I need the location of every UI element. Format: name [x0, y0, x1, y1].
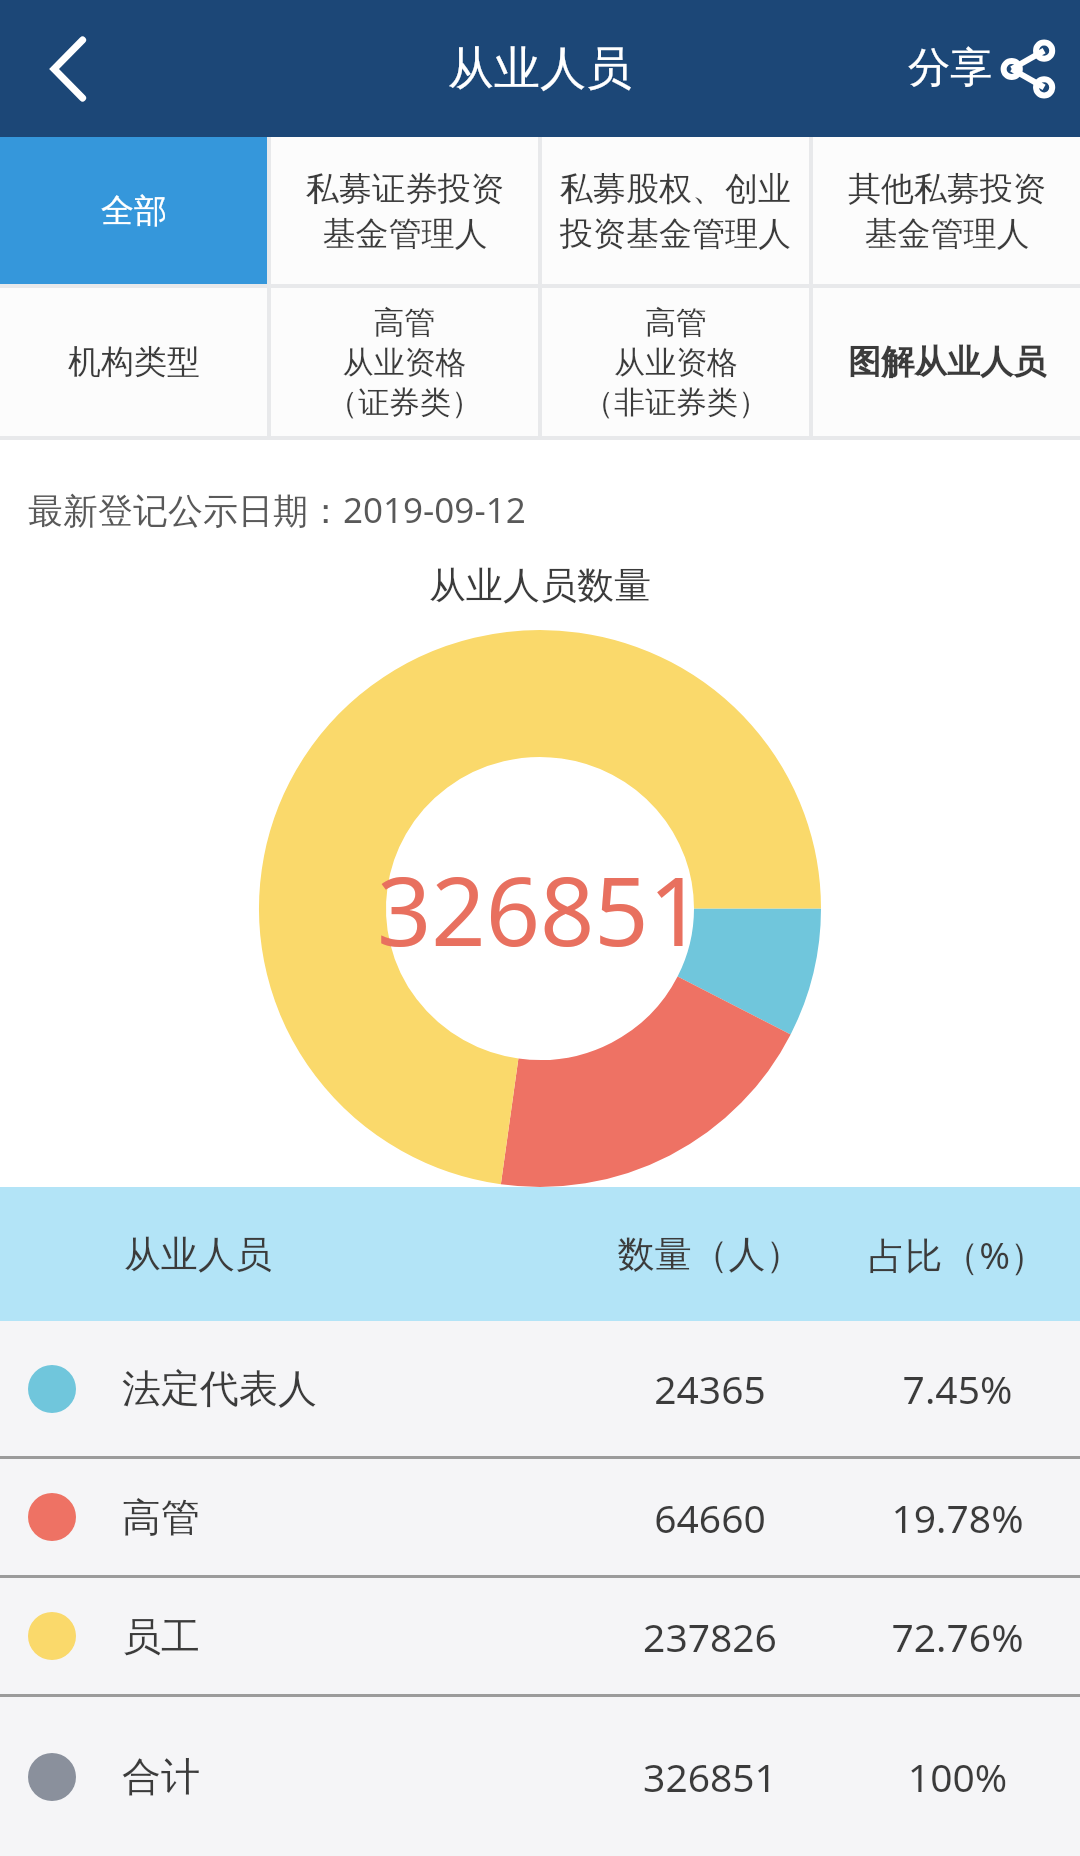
staticText: 私募证券投资 基金管理人 — [306, 168, 504, 254]
button[interactable]: 全部 — [0, 137, 267, 284]
button[interactable]: 员工 — [0, 1578, 1080, 1694]
staticText: 高管 从业资格 （证券类） — [327, 303, 482, 422]
button[interactable]: 合计 — [0, 1697, 1080, 1856]
staticText: 高管 — [122, 1493, 585, 1542]
staticText: 图解从业人员 — [848, 341, 1046, 383]
staticText: 从业人员数量 — [429, 562, 651, 609]
button[interactable]: 私募股权、创业 投资基金管理人 — [542, 137, 809, 284]
button[interactable]: 法定代表人 — [0, 1321, 1080, 1456]
staticText: 员工 — [122, 1612, 585, 1661]
staticText: 私募股权、创业 投资基金管理人 — [560, 168, 791, 254]
staticText: 分享 — [908, 42, 992, 95]
button[interactable]: 高管 — [0, 1459, 1080, 1575]
staticText: 326851 — [585, 1750, 835, 1803]
staticText: 237826 — [585, 1610, 835, 1663]
staticText: 法定代表人 — [122, 1364, 585, 1413]
staticText: 19.78% — [835, 1491, 1080, 1544]
staticText: 机构类型 — [68, 341, 200, 383]
button[interactable]: 高管 从业资格 （非证券类） — [542, 288, 809, 436]
staticText: 7.45% — [835, 1362, 1080, 1415]
button[interactable]: 私募证券投资 基金管理人 — [271, 137, 538, 284]
staticText: 从业人员 — [448, 40, 632, 98]
staticText: 最新登记公示日期：2019-09-12 — [28, 486, 526, 534]
staticText: 合计 — [122, 1752, 585, 1801]
other: Share — [1002, 42, 1056, 96]
staticText: 326851 — [377, 844, 704, 973]
staticText: 其他私募投资 基金管理人 — [848, 168, 1046, 254]
staticText: 占比（%） — [835, 1229, 1080, 1280]
staticText: 全部 — [101, 190, 167, 232]
staticText: 72.76% — [835, 1610, 1080, 1663]
button[interactable]: 分享 — [908, 0, 1056, 137]
staticText: 24365 — [585, 1362, 835, 1415]
staticText: 64660 — [585, 1491, 835, 1544]
staticText: 100% — [835, 1750, 1080, 1803]
staticText: 高管 从业资格 （非证券类） — [583, 303, 769, 422]
button[interactable]: 图解从业人员 — [813, 288, 1080, 436]
button[interactable]: 其他私募投资 基金管理人 — [813, 137, 1080, 284]
staticText: 从业人员 — [124, 1231, 585, 1278]
button[interactable]: 机构类型 — [0, 288, 267, 436]
button[interactable]: Back — [0, 0, 140, 137]
staticText: 数量（人） — [585, 1231, 835, 1278]
button[interactable]: 高管 从业资格 （证券类） — [271, 288, 538, 436]
